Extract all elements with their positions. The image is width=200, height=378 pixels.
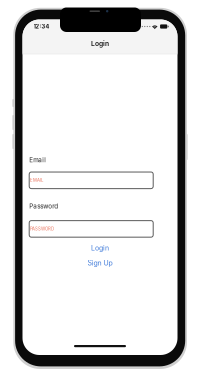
button[interactable]: Sign Up [22,258,177,267]
button[interactable]: Login [22,243,177,252]
button[interactable]: EMAIL [29,172,153,189]
staticText: PASSWORD [30,226,54,231]
staticText: 12:34 [33,23,49,30]
staticText: Login [91,39,109,48]
button[interactable]: PASSWORD [29,221,153,237]
staticText: Login [91,244,109,252]
staticText: Password [29,202,58,210]
staticText: Email [29,156,46,164]
staticText: Sign Up [87,259,112,267]
staticText: EMAIL [30,178,43,183]
